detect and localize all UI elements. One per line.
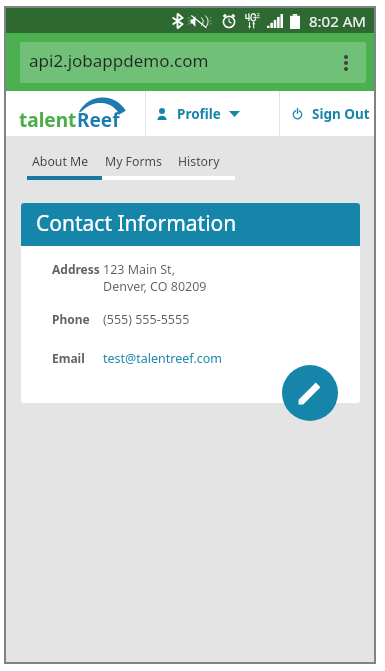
staticText: Contact Information — [36, 209, 237, 238]
button[interactable]: Sign Out — [280, 91, 374, 136]
button[interactable]: History — [175, 150, 223, 172]
staticText: Email — [52, 350, 85, 366]
staticText: Address — [52, 261, 100, 277]
button[interactable]: Profile — [146, 91, 279, 136]
button[interactable]: talent — [6, 91, 145, 136]
staticText: Phone — [52, 311, 90, 327]
button[interactable]: About Me — [29, 150, 92, 172]
staticText: Reef — [77, 107, 120, 133]
staticText: talent — [19, 107, 77, 133]
staticText: Denver, CO 80209 — [103, 278, 207, 295]
staticText: api2.jobappdemo.com — [29, 49, 209, 72]
staticText: 8:02 AM — [309, 11, 366, 31]
staticText: About Me — [32, 153, 89, 170]
button[interactable]: api2.jobappdemo.com — [20, 42, 366, 83]
button[interactable]: My Forms — [102, 150, 165, 172]
staticText: Profile — [177, 105, 221, 123]
staticText: 123 Main St, — [103, 261, 175, 278]
button[interactable]: Edit — [282, 365, 338, 421]
staticText: Sign Out — [312, 105, 370, 123]
button[interactable]: More options — [326, 42, 366, 83]
staticText: History — [178, 153, 220, 170]
staticText: My Forms — [105, 153, 162, 170]
staticText: test@talentreef.com — [103, 350, 223, 367]
staticText: (555) 555-5555 — [103, 311, 190, 328]
